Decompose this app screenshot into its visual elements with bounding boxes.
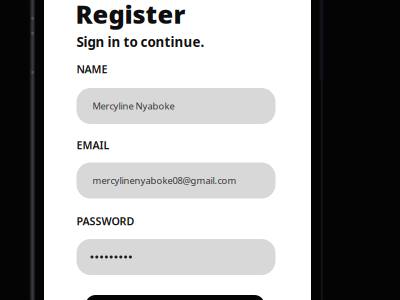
staticText: Register xyxy=(75,0,185,31)
button[interactable]: Register xyxy=(85,295,264,300)
staticText: EMAIL xyxy=(76,138,109,152)
staticText: Sign in to continue. xyxy=(76,33,204,51)
staticText: PASSWORD xyxy=(76,214,134,228)
button[interactable]: Password xyxy=(76,239,275,275)
staticText: NAME xyxy=(76,62,107,76)
button[interactable]: Mercyline Nyaboke xyxy=(76,88,275,124)
button[interactable]: mercylinenyaboke08@gmail.com xyxy=(76,162,275,198)
staticText: mercylinenyaboke08@gmail.com xyxy=(92,174,236,187)
staticText: Mercyline Nyaboke xyxy=(92,100,174,112)
